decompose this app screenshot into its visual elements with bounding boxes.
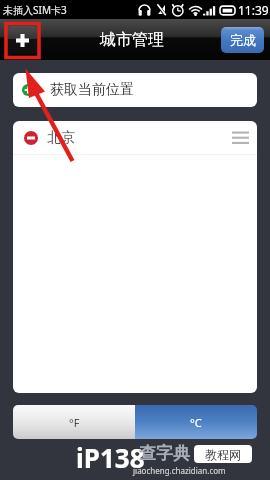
button[interactable]: °C	[135, 405, 257, 439]
button[interactable]: 获取当前位置	[13, 73, 257, 107]
staticText: 查字典	[139, 443, 190, 464]
staticText: 未插入SIM卡3	[3, 3, 67, 17]
staticText: jiaocheng.chazidian.com	[133, 465, 226, 476]
button[interactable]: °F	[13, 405, 135, 439]
staticText: °F	[69, 415, 80, 430]
button[interactable]: 北京	[13, 121, 257, 154]
staticText: 获取当前位置	[50, 81, 134, 99]
staticText: 11:39	[238, 2, 269, 18]
staticText: °C	[190, 415, 202, 430]
button[interactable]: Add city	[8, 26, 37, 54]
staticText: 完成	[230, 32, 256, 48]
staticText: 教程网	[205, 447, 241, 462]
staticText: 北京	[47, 129, 75, 147]
button[interactable]: 完成	[221, 27, 264, 53]
staticText: iP138	[76, 440, 145, 475]
staticText: 城市管理	[100, 30, 164, 50]
